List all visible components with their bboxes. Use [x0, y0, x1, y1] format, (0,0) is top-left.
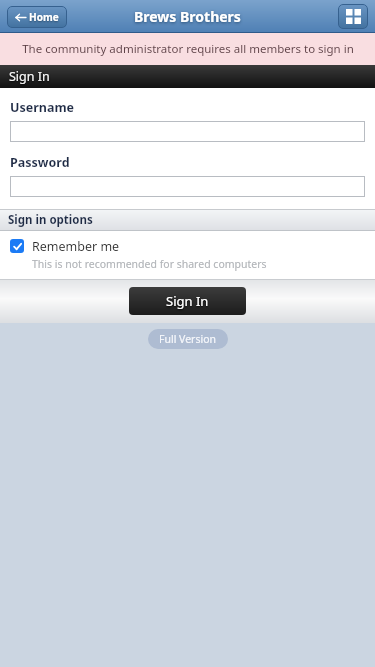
staticText: Sign In — [166, 292, 209, 310]
staticText: Remember me — [32, 238, 120, 255]
staticText: Sign In — [9, 68, 50, 85]
staticText: Home — [29, 10, 59, 24]
button[interactable]: Home — [7, 6, 67, 28]
staticText: This is not recommended for shared compu… — [32, 257, 267, 271]
staticText: Full Version — [159, 332, 217, 346]
staticText: The community administrator requires all… — [22, 41, 354, 57]
staticText: Username — [10, 99, 75, 116]
button[interactable] — [10, 121, 365, 142]
button[interactable]: Menu — [338, 4, 368, 29]
staticText: Brews Brothers — [134, 7, 241, 26]
button[interactable]: Full Version — [148, 329, 228, 349]
button[interactable]: Sign In — [129, 287, 246, 315]
staticText: Sign in options — [8, 212, 93, 228]
staticText: Password — [10, 154, 70, 171]
button[interactable] — [10, 176, 365, 197]
button[interactable]: Remember me — [0, 231, 375, 279]
